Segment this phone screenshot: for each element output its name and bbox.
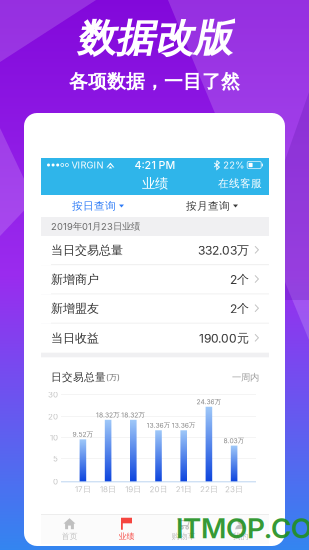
- staticText: 日交易总量: [51, 371, 106, 384]
- staticText: 业绩: [118, 531, 134, 541]
- staticText: 4:21 PM: [134, 158, 175, 171]
- staticText: 21日: [176, 484, 192, 494]
- staticText: 0: [53, 477, 58, 486]
- staticText: 8.03万: [224, 436, 245, 445]
- staticText: 20日: [149, 484, 167, 494]
- staticText: 新增盟友: [51, 301, 99, 316]
- staticText: 数据改版: [76, 14, 232, 63]
- button[interactable]: 在线客服: [211, 172, 269, 195]
- staticText: 22%: [223, 159, 244, 171]
- staticText: 2个: [230, 301, 249, 316]
- staticText: ITMOP.COM: [176, 511, 309, 545]
- staticText: 各项数据，一目了然: [69, 70, 240, 93]
- button[interactable]: 当日交易总量: [41, 236, 269, 265]
- staticText: 购物车: [171, 531, 195, 541]
- staticText: 332.03万: [198, 243, 249, 258]
- staticText: 23日: [225, 484, 243, 494]
- staticText: 5: [53, 454, 58, 463]
- staticText: 18.32万: [96, 411, 120, 419]
- button[interactable]: 首页: [41, 515, 98, 544]
- button[interactable]: 新增商户: [41, 265, 269, 294]
- staticText: 10: [50, 433, 58, 442]
- staticText: 首页: [61, 531, 77, 541]
- staticText: 2个: [230, 272, 249, 287]
- staticText: (万): [106, 372, 120, 382]
- staticText: 2019年01月23日业绩: [51, 221, 140, 232]
- staticText: 当日交易总量: [51, 243, 123, 258]
- staticText: 13.36万: [172, 421, 196, 429]
- staticText: 我的: [232, 531, 248, 541]
- staticText: 22日: [200, 484, 218, 494]
- button[interactable]: 按月查询: [155, 195, 269, 217]
- staticText: 当日收益: [51, 331, 99, 346]
- staticText: 18.32万: [121, 411, 145, 419]
- button[interactable]: 按日查询: [41, 195, 155, 217]
- staticText: 17日: [75, 484, 91, 494]
- staticText: 24.36万: [196, 397, 221, 406]
- staticText: 20: [48, 412, 58, 421]
- staticText: 18日: [100, 484, 116, 494]
- staticText: 30: [48, 390, 58, 399]
- button[interactable]: 我的: [212, 515, 269, 544]
- staticText: VIRGIN: [71, 159, 103, 171]
- button[interactable]: 新增盟友: [41, 294, 269, 324]
- staticText: 业绩: [142, 175, 168, 192]
- button[interactable]: 当日收益: [41, 324, 269, 353]
- staticText: 一周内: [232, 371, 259, 383]
- staticText: 190.00元: [199, 331, 249, 346]
- button[interactable]: 业绩: [98, 515, 155, 544]
- staticText: 按月查询: [186, 199, 230, 213]
- staticText: 新增商户: [51, 272, 99, 287]
- staticText: 19日: [125, 484, 141, 494]
- staticText: 9.52万: [72, 430, 93, 438]
- staticText: 13.36万: [146, 421, 170, 429]
- button[interactable]: 购物车: [155, 515, 212, 544]
- staticText: 按日查询: [72, 199, 116, 213]
- staticText: 在线客服: [218, 177, 262, 190]
